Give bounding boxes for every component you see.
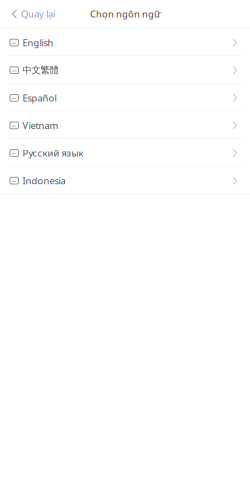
staticText: English [22,36,53,49]
button[interactable]: Español [0,84,250,111]
button[interactable]: Vietnam [0,111,250,139]
button[interactable]: Русский язык [0,139,250,167]
button[interactable]: English [0,29,250,56]
staticText: Quay lại [21,8,55,20]
button[interactable]: Quay lại [0,0,65,28]
staticText: Vietnam [22,119,58,132]
staticText: Español [22,92,56,104]
staticText: Русский язык [22,147,83,159]
staticText: Chọn ngôn ngữ [90,8,160,20]
button[interactable]: 中文繁體 [0,56,250,84]
button[interactable]: Indonesia [0,167,250,194]
staticText: Indonesia [22,174,65,187]
staticText: 中文繁體 [22,64,58,76]
